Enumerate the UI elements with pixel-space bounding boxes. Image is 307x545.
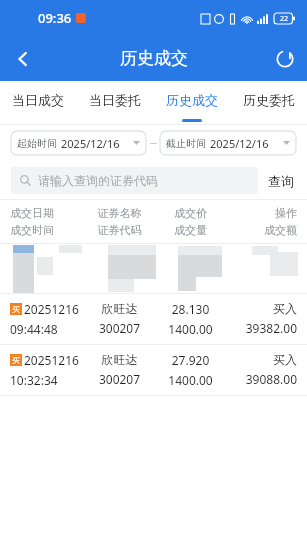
staticText: 1400.00	[155, 321, 226, 337]
staticText: 09:44:48	[10, 321, 58, 337]
staticText: 2025/12/16	[210, 136, 269, 151]
button[interactable]: 起始时间	[11, 131, 146, 155]
staticText: 买入	[226, 352, 297, 367]
staticText: 09:36	[38, 9, 72, 27]
button[interactable]: 买	[0, 294, 307, 344]
button[interactable]: 查询	[258, 167, 296, 194]
staticText: 请输入查询的证券代码	[38, 173, 158, 188]
staticText: 成交时间	[10, 223, 84, 237]
staticText: 成交价	[155, 206, 226, 220]
staticText: 买	[12, 355, 20, 365]
staticText: 39088.00	[226, 371, 297, 387]
button[interactable]: 买	[0, 345, 307, 395]
staticText: 27.920	[155, 352, 226, 368]
staticText: 历史委托	[243, 92, 295, 108]
staticText: 300207	[84, 371, 155, 387]
staticText: 22	[280, 14, 289, 24]
staticText: 证券名称	[84, 206, 155, 220]
staticText: 查询	[268, 173, 294, 189]
staticText: 历史成交	[166, 92, 218, 108]
staticText: 20251216	[24, 301, 79, 317]
staticText: 买入	[226, 301, 297, 316]
staticText: 欣旺达	[84, 301, 155, 316]
staticText: 成交日期	[10, 206, 84, 220]
staticText: 买	[12, 304, 20, 314]
button[interactable]: Back	[0, 36, 45, 81]
staticText: 截止时间	[166, 137, 206, 150]
staticText: 起始时间	[17, 137, 57, 150]
staticText: 300207	[84, 320, 155, 336]
staticText: 39382.00	[226, 320, 297, 336]
button[interactable]: 当日委托	[76, 81, 153, 119]
staticText: 2025/12/16	[61, 136, 120, 151]
button[interactable]: 请输入查询的证券代码	[11, 167, 258, 194]
staticText: 历史成交	[120, 48, 188, 69]
staticText: 当日委托	[89, 92, 141, 108]
button[interactable]: Refresh	[262, 36, 307, 81]
staticText: 20251216	[24, 352, 79, 368]
staticText: 证券代码	[84, 223, 155, 237]
staticText: 操作	[226, 206, 297, 220]
staticText: 28.130	[155, 301, 226, 317]
button[interactable]: 当日成交	[0, 81, 76, 119]
staticText: 成交量	[155, 223, 226, 237]
button[interactable]: 历史成交	[153, 81, 230, 119]
staticText: 当日成交	[12, 92, 64, 108]
staticText: 欣旺达	[84, 352, 155, 367]
staticText: 1400.00	[155, 372, 226, 388]
staticText: 成交额	[226, 223, 297, 237]
staticText: 10:32:34	[10, 372, 58, 388]
button[interactable]: 历史委托	[230, 81, 307, 119]
button[interactable]: 截止时间	[160, 131, 296, 155]
